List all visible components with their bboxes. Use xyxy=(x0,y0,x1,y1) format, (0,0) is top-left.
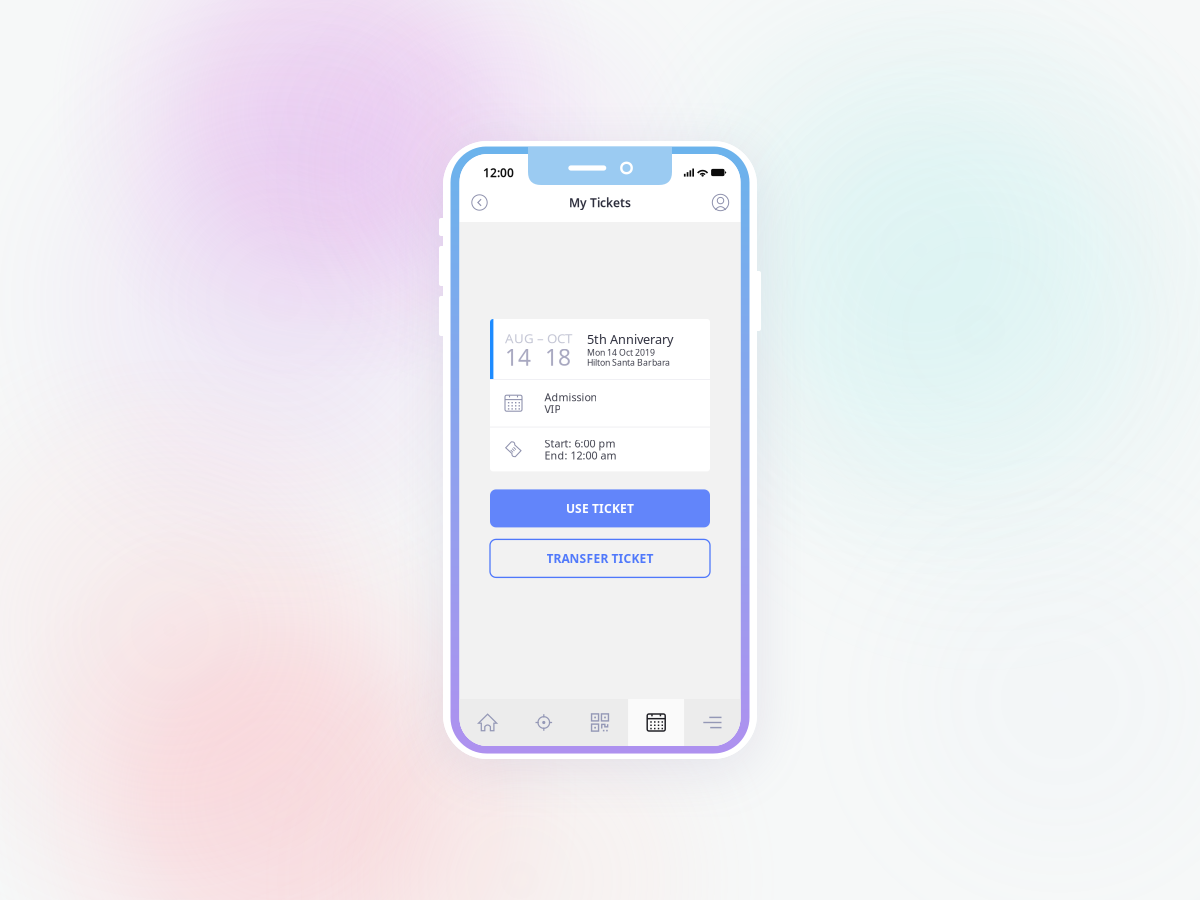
staticText: TRANSFER TICKET xyxy=(546,550,653,566)
staticText: AUG – OCT xyxy=(505,329,572,347)
staticText: 5th Anniverary xyxy=(587,330,673,348)
button[interactable]: Home xyxy=(459,699,516,746)
button[interactable]: Account xyxy=(703,185,737,219)
button[interactable]: USE TICKET xyxy=(490,489,710,527)
staticText: Mon 14 Oct 2019 xyxy=(587,347,655,358)
button[interactable]: TRANSFER TICKET xyxy=(490,539,710,577)
button[interactable]: My Tickets xyxy=(628,699,684,746)
staticText: 18 xyxy=(545,342,571,372)
staticText: End: 12:00 am xyxy=(544,448,616,463)
staticText: My Tickets xyxy=(569,194,631,211)
button[interactable]: More xyxy=(684,699,740,746)
staticText: 14 xyxy=(505,342,531,372)
staticText: Hilton Santa Barbara xyxy=(587,357,670,368)
button[interactable]: Scan code xyxy=(572,699,628,746)
button[interactable]: Nearby xyxy=(516,699,572,746)
staticText: VIP xyxy=(544,402,560,416)
staticText: Admission xyxy=(544,390,597,404)
button[interactable]: Back xyxy=(462,185,496,219)
staticText: USE TICKET xyxy=(566,500,634,516)
staticText: 12:00 xyxy=(483,164,514,180)
staticText: Start: 6:00 pm xyxy=(544,436,615,451)
